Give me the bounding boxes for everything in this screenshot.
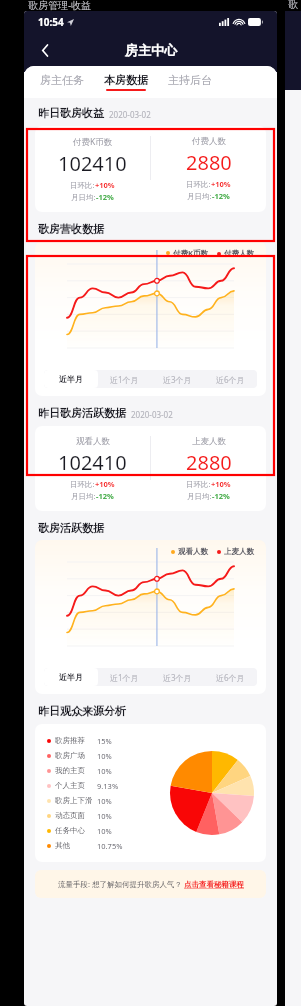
staticText: 付费K币数 [73,136,113,148]
staticText: 个人主页 [55,781,97,790]
staticText: 观看人数 [178,547,208,556]
staticText: 歌房上下滑 [55,796,97,805]
button[interactable]: 近3个月 [151,370,204,388]
staticText: +10% [95,479,115,489]
button[interactable]: 近半月 [44,370,98,388]
staticText: 月日均: [187,491,212,501]
staticText: 10% [97,766,112,776]
staticText: 主持后台 [168,73,212,87]
staticText: -12% [212,491,230,501]
staticText: 2020-03-02 [109,109,151,120]
staticText: 10% [97,796,112,806]
button[interactable]: 近3个月 [151,668,204,686]
staticText: 2880 [186,149,232,176]
staticText: -12% [96,192,114,202]
button[interactable]: 付费K币数 [35,126,266,212]
staticText: 上麦人数 [192,436,226,447]
staticText: 近6个月 [216,374,245,385]
button[interactable]: 近半月 [44,668,98,686]
staticText: 歌房推荐 [55,736,97,745]
staticText: 歌房活跃数据 [38,521,104,535]
staticText: -12% [212,191,230,201]
button[interactable]: 近6个月 [204,370,257,388]
button[interactable]: 近1个月 [98,668,151,686]
staticText: 歌房营收数据 [38,222,104,236]
staticText: -12% [96,491,114,501]
staticText: 日环比: [186,479,211,489]
staticText: 10% [97,826,112,836]
staticText: 歌 [288,0,298,11]
staticText: 点击查看秘籍课程 [184,880,244,889]
staticText: 观看人数 [76,436,110,447]
staticText: 其他 [55,841,97,850]
staticText: +10% [211,179,231,189]
staticText: 近半月 [59,374,83,384]
staticText: 付费K币数 [173,248,208,258]
staticText: 付费人数 [224,249,254,258]
staticText: 月日均: [187,191,212,201]
button[interactable]: 本房数据 [102,71,150,93]
staticText: 日环比: [70,479,95,489]
button[interactable]: 近6个月 [204,668,257,686]
staticText: 近3个月 [163,672,192,683]
staticText: 102410 [58,150,127,177]
staticText: 近半月 [59,672,83,682]
staticText: 10% [97,811,112,821]
staticText: 歌房管理-收益 [28,0,92,12]
staticText: 2020-03-02 [131,409,173,420]
staticText: 102410 [58,449,127,476]
staticText: +10% [95,180,115,190]
staticText: 歌房广场 [55,751,97,760]
button[interactable]: 歌房推荐 [35,724,266,862]
staticText: 昨日歌房收益 [38,106,104,120]
staticText: 昨日歌房活跃数据 [38,406,126,420]
staticText: 本房数据 [104,73,148,87]
staticText: 上麦人数 [224,547,254,556]
button[interactable]: 流量手段: 想了解如何提升歌房人气？ [35,870,266,898]
staticText: 2880 [186,449,232,476]
staticText: 月日均: [71,491,96,501]
staticText: 日环比: [186,179,211,189]
staticText: 流量手段: 想了解如何提升歌房人气？ [58,879,182,889]
button[interactable]: 房主任务 [38,71,86,93]
staticText: 9.13% [97,781,119,791]
staticText: 房主任务 [40,73,84,87]
button[interactable]: 主持后台 [166,71,214,93]
staticText: 近3个月 [163,374,192,385]
staticText: 近6个月 [216,672,245,683]
staticText: 昨日观众来源分析 [38,704,126,718]
staticText: 我的主页 [55,766,97,775]
staticText: 近1个月 [110,374,139,385]
button[interactable]: 观看人数 [35,426,266,511]
staticText: 10.75% [97,841,123,851]
staticText: 房主中心 [125,42,177,58]
staticText: +10% [211,479,231,489]
staticText: 15% [97,736,112,746]
staticText: 动态页面 [55,811,97,820]
button[interactable]: Back [32,37,58,63]
staticText: 付费人数 [192,136,226,147]
button[interactable]: 近1个月 [98,370,151,388]
staticText: 月日均: [71,192,96,202]
staticText: 10:54 [38,15,64,29]
staticText: 近1个月 [110,672,139,683]
staticText: 任务中心 [55,826,97,835]
staticText: 日环比: [70,180,95,190]
staticText: 10% [97,751,112,761]
